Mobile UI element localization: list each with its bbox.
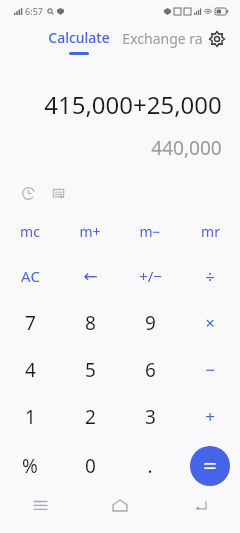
- staticText: +/−: [139, 266, 162, 286]
- button[interactable]: 5: [60, 346, 120, 393]
- button[interactable]: 9: [120, 299, 180, 346]
- button[interactable]: 2: [60, 393, 120, 440]
- button[interactable]: .: [120, 440, 180, 492]
- button[interactable]: 4: [0, 346, 60, 393]
- staticText: 1: [25, 404, 36, 430]
- button[interactable]: 0: [60, 440, 120, 492]
- button[interactable]: Recent apps: [0, 492, 80, 518]
- button[interactable]: Back: [160, 492, 240, 518]
- button[interactable]: Convert: [48, 183, 68, 203]
- staticText: AC: [21, 266, 40, 286]
- button[interactable]: +: [180, 393, 240, 440]
- button[interactable]: History: [18, 183, 38, 203]
- button[interactable]: ×: [180, 299, 240, 346]
- staticText: 6:57: [25, 5, 43, 17]
- staticText: 415,000+25,000: [44, 88, 222, 121]
- staticText: m−: [139, 222, 161, 241]
- staticText: Exchange ra: [122, 29, 203, 48]
- staticText: ÷: [205, 265, 215, 288]
- button[interactable]: ←: [60, 253, 120, 299]
- staticText: 9: [145, 310, 156, 336]
- staticText: .: [147, 453, 153, 479]
- button[interactable]: ÷: [180, 253, 240, 299]
- button[interactable]: +/−: [120, 253, 180, 299]
- button[interactable]: Settings: [204, 26, 230, 52]
- button[interactable]: 8: [60, 299, 120, 346]
- staticText: 5: [85, 357, 96, 383]
- button[interactable]: 3: [120, 393, 180, 440]
- staticText: mc: [20, 222, 40, 241]
- button[interactable]: Equals: [190, 446, 230, 486]
- staticText: 3: [145, 404, 156, 430]
- button[interactable]: %: [0, 440, 60, 492]
- button[interactable]: Exchange ra: [122, 29, 203, 48]
- button[interactable]: m−: [120, 209, 180, 253]
- staticText: ←: [83, 266, 98, 286]
- button[interactable]: m+: [60, 209, 120, 253]
- button[interactable]: 6: [120, 346, 180, 393]
- staticText: Calculate: [48, 28, 110, 47]
- staticText: m+: [79, 222, 101, 241]
- staticText: 2: [85, 404, 96, 430]
- button[interactable]: −: [180, 346, 240, 393]
- staticText: %: [22, 453, 38, 479]
- staticText: 7: [25, 310, 36, 336]
- staticText: 8: [85, 310, 96, 336]
- staticText: 4: [25, 357, 36, 383]
- staticText: mr: [201, 222, 220, 241]
- button[interactable]: mr: [180, 209, 240, 253]
- staticText: −: [205, 358, 215, 381]
- button[interactable]: 7: [0, 299, 60, 346]
- button[interactable]: AC: [0, 253, 60, 299]
- staticText: 440,000: [151, 135, 222, 161]
- button[interactable]: 1: [0, 393, 60, 440]
- staticText: +: [205, 405, 215, 428]
- button[interactable]: Calculate: [48, 28, 110, 55]
- staticText: 6: [145, 357, 156, 383]
- staticText: ×: [205, 311, 215, 334]
- staticText: 0: [85, 453, 96, 479]
- button[interactable]: mc: [0, 209, 60, 253]
- button[interactable]: Home: [80, 492, 160, 518]
